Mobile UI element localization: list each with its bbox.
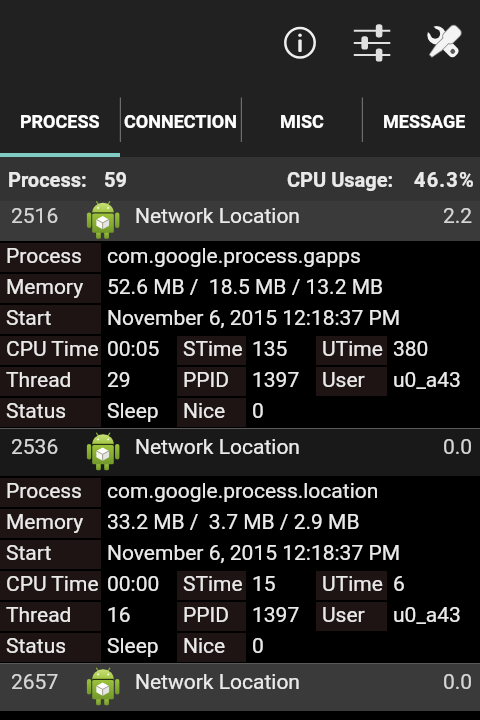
staticText: 00:00 bbox=[107, 572, 160, 597]
staticText: Memory bbox=[6, 275, 84, 300]
staticText: November 6, 2015 12:18:37 PM bbox=[107, 306, 400, 331]
staticText: Process: bbox=[8, 168, 87, 191]
staticText: Start bbox=[6, 541, 52, 566]
staticText: 29 bbox=[107, 368, 131, 393]
staticText: CPU Time bbox=[6, 572, 99, 597]
staticText: MISC bbox=[280, 111, 324, 132]
staticText: CPU Time bbox=[6, 337, 99, 362]
staticText: Thread bbox=[6, 603, 72, 628]
button[interactable]: 2536 bbox=[0, 429, 480, 476]
staticText: 15 bbox=[252, 572, 276, 597]
staticText: Nice bbox=[183, 634, 226, 659]
staticText: 0 bbox=[252, 634, 264, 659]
staticText: Sleep bbox=[107, 634, 159, 659]
button[interactable]: PROCESS bbox=[0, 97, 120, 153]
staticText: UTime bbox=[322, 337, 383, 362]
staticText: 0.0 bbox=[443, 435, 473, 460]
staticText: PPID bbox=[183, 603, 229, 628]
staticText: User bbox=[322, 368, 365, 393]
staticText: 52.6 MB / 18.5 MB / 13.2 MB bbox=[107, 275, 384, 300]
staticText: 1397 bbox=[252, 603, 300, 628]
staticText: 380 bbox=[393, 337, 429, 362]
staticText: Status bbox=[6, 399, 67, 424]
staticText: User bbox=[322, 603, 365, 628]
staticText: Sleep bbox=[107, 399, 159, 424]
staticText: PPID bbox=[183, 368, 229, 393]
staticText: Process bbox=[6, 244, 82, 269]
staticText: Network Location bbox=[135, 204, 300, 229]
staticText: 0.0 bbox=[443, 670, 473, 695]
staticText: STime bbox=[183, 572, 243, 597]
staticText: 6 bbox=[393, 572, 405, 597]
staticText: 16 bbox=[107, 603, 131, 628]
staticText: 46.3% bbox=[414, 168, 476, 191]
staticText: Process bbox=[6, 479, 82, 504]
staticText: STime bbox=[183, 337, 243, 362]
button[interactable]: 2657 bbox=[0, 664, 480, 711]
staticText: PROCESS bbox=[20, 111, 100, 132]
staticText: Start bbox=[6, 306, 52, 331]
staticText: u0_a43 bbox=[393, 603, 461, 628]
staticText: 135 bbox=[252, 337, 288, 362]
staticText: u0_a43 bbox=[393, 368, 461, 393]
staticText: Thread bbox=[6, 368, 72, 393]
staticText: 0 bbox=[252, 399, 264, 424]
staticText: Network Location bbox=[135, 670, 300, 695]
staticText: 59 bbox=[104, 168, 127, 191]
staticText: 00:05 bbox=[107, 337, 160, 362]
staticText: UTime bbox=[322, 572, 383, 597]
staticText: November 6, 2015 12:18:37 PM bbox=[107, 541, 400, 566]
button[interactable]: Settings bbox=[344, 15, 400, 71]
staticText: Nice bbox=[183, 399, 226, 424]
staticText: 2516 bbox=[11, 204, 59, 229]
staticText: CPU Usage: bbox=[287, 168, 394, 191]
button[interactable]: MISC bbox=[241, 97, 362, 153]
staticText: MESSAGE bbox=[383, 111, 466, 132]
button[interactable]: Tools bbox=[416, 15, 472, 71]
staticText: Status bbox=[6, 634, 67, 659]
staticText: CONNECTION bbox=[124, 111, 237, 132]
staticText: Memory bbox=[6, 510, 84, 535]
button[interactable]: MESSAGE bbox=[362, 97, 480, 153]
staticText: com.google.process.location bbox=[107, 479, 379, 504]
button[interactable]: Information bbox=[272, 15, 328, 71]
button[interactable]: 2516 bbox=[0, 201, 480, 241]
button[interactable]: Process bbox=[0, 476, 480, 663]
button[interactable]: Process bbox=[0, 241, 480, 428]
staticText: 2.2 bbox=[443, 204, 473, 229]
button[interactable]: CONNECTION bbox=[120, 97, 241, 153]
staticText: 1397 bbox=[252, 368, 300, 393]
staticText: 2657 bbox=[11, 670, 59, 695]
staticText: Network Location bbox=[135, 435, 300, 460]
staticText: 33.2 MB / 3.7 MB / 2.9 MB bbox=[107, 510, 360, 535]
staticText: 2536 bbox=[11, 435, 59, 460]
staticText: com.google.process.gapps bbox=[107, 244, 361, 269]
